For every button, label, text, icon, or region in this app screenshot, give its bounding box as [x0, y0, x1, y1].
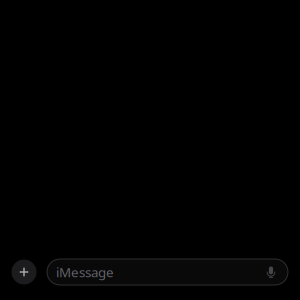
button[interactable]: Add attachment	[11, 259, 37, 285]
button[interactable]: Dictate	[263, 260, 279, 284]
button[interactable]: iMessage	[47, 259, 288, 285]
staticText: iMessage	[56, 263, 114, 281]
